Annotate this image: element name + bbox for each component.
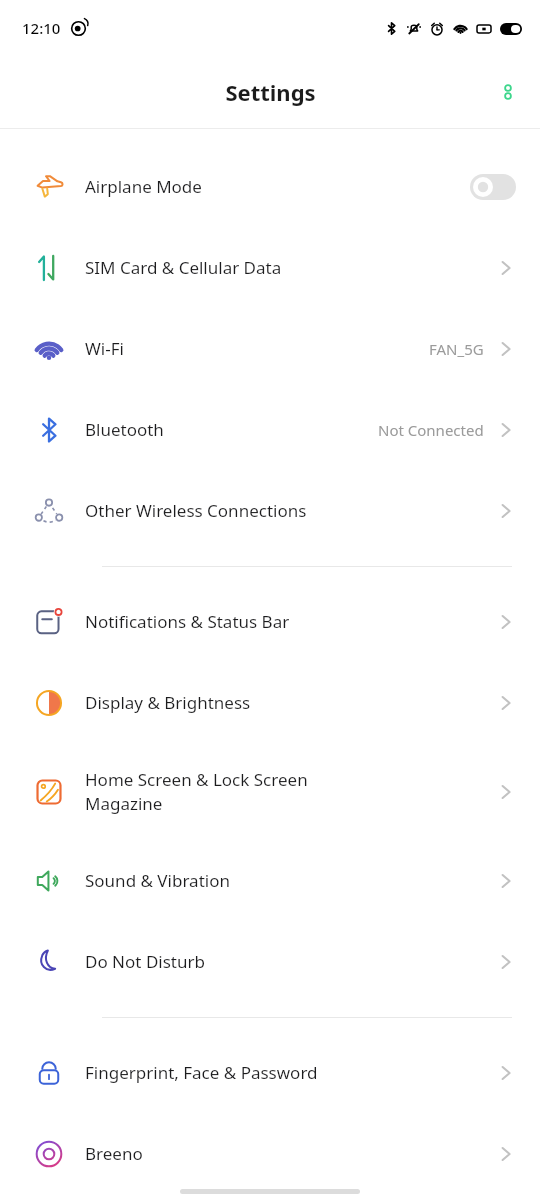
button[interactable]: Breeno — [0, 1113, 540, 1194]
staticText: Bluetooth — [85, 418, 378, 441]
staticText: FAN_5G — [429, 339, 484, 359]
staticText: Not Connected — [378, 420, 484, 440]
button[interactable]: Fingerprint, Face & Password — [0, 1032, 540, 1113]
button[interactable]: Display & Brightness — [0, 662, 540, 743]
staticText: 12:10 — [22, 18, 61, 38]
button[interactable]: Do Not Disturb — [0, 921, 540, 1002]
staticText: Display & Brightness — [85, 691, 496, 714]
button[interactable]: Home Screen & Lock Screen Magazine — [0, 743, 540, 840]
button[interactable]: Sound & Vibration — [0, 840, 540, 921]
staticText: Wi-Fi — [85, 337, 429, 360]
staticText: Fingerprint, Face & Password — [85, 1061, 496, 1084]
staticText: Other Wireless Connections — [85, 499, 496, 522]
button[interactable]: Bluetooth — [0, 389, 540, 470]
staticText: Airplane Mode — [85, 175, 470, 198]
staticText: Settings — [225, 77, 316, 107]
staticText: Home Screen & Lock Screen Magazine — [85, 768, 496, 815]
button[interactable]: Airplane Mode toggle — [470, 174, 516, 200]
button[interactable]: More options — [484, 68, 532, 116]
button[interactable]: Wi-Fi — [0, 308, 540, 389]
button[interactable]: Airplane Mode — [0, 146, 540, 227]
staticText: Breeno — [85, 1142, 496, 1165]
staticText: Notifications & Status Bar — [85, 610, 496, 633]
button[interactable]: SIM Card & Cellular Data — [0, 227, 540, 308]
button[interactable]: Notifications & Status Bar — [0, 581, 540, 662]
button[interactable]: Other Wireless Connections — [0, 470, 540, 551]
staticText: SIM Card & Cellular Data — [85, 256, 496, 279]
staticText: Do Not Disturb — [85, 950, 496, 973]
staticText: Sound & Vibration — [85, 869, 496, 892]
